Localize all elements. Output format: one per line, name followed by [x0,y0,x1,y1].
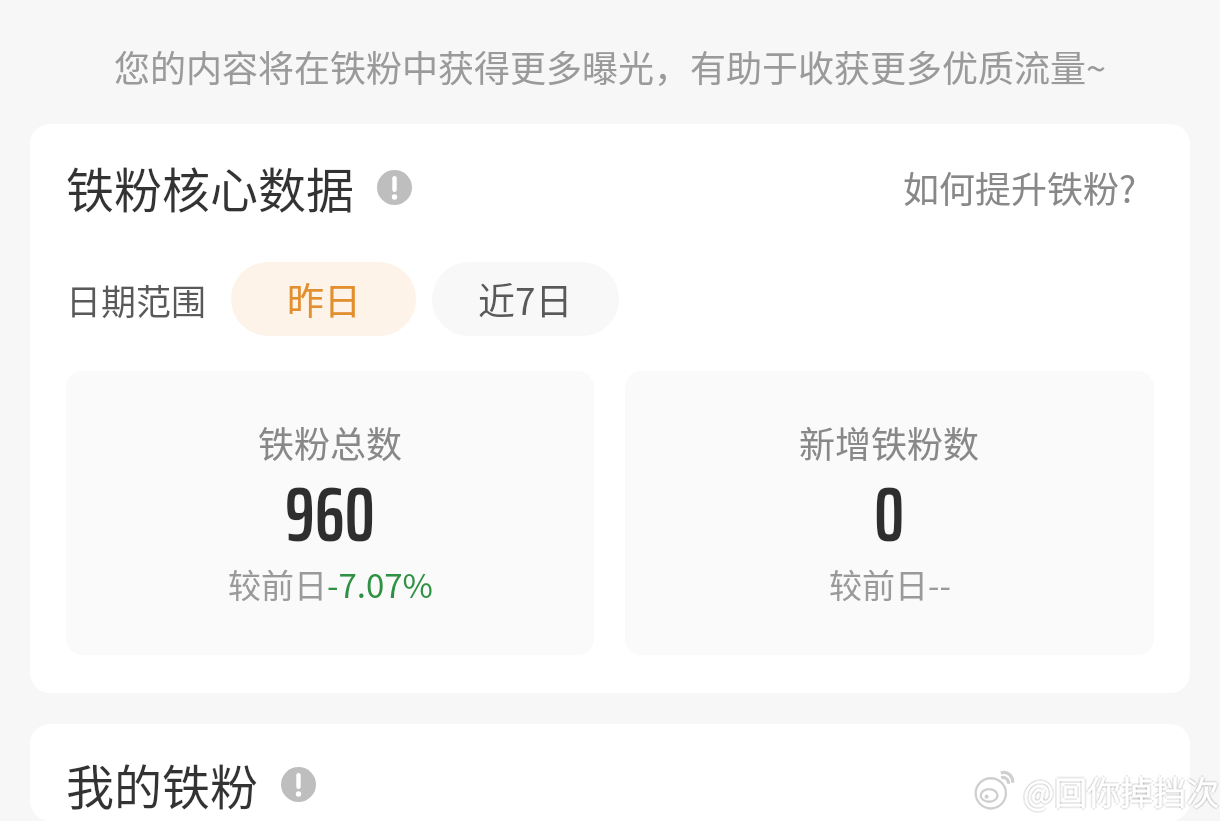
staticText: 较前日-- [829,560,951,608]
staticText: 您的内容将在铁粉中获得更多曝光，有助于收获更多优质流量~ [114,40,1106,92]
button[interactable]: 新增铁粉数 [625,371,1154,655]
staticText: 铁粉总数 [258,416,403,468]
staticText: 铁粉核心数据 [66,152,355,222]
staticText: 960 [285,455,375,575]
button[interactable]: 我的铁粉说明 [281,767,316,802]
button[interactable]: 铁粉总数 [66,371,594,655]
staticText: 0 [874,455,905,575]
button[interactable]: 昨日 [231,262,416,336]
staticText: 昨日 [287,272,361,326]
button[interactable]: 铁粉核心数据说明 [377,170,412,205]
staticText: @回你掉挡次 [1021,767,1218,815]
staticText: @回你掉挡次 [1023,769,1220,817]
staticText: 较前日-7.07% [228,560,433,608]
button[interactable]: 近7日 [432,262,619,336]
staticText: 新增铁粉数 [799,416,980,468]
button[interactable]: 如何提升铁粉? [903,161,1137,213]
staticText: 日期范围 [66,274,207,325]
staticText: 近7日 [478,272,573,326]
staticText: @回你掉挡次 [1025,767,1220,815]
staticText: @回你掉挡次 [1023,765,1220,813]
staticText: 我的铁粉 [66,749,259,819]
staticText: @回你掉挡次 [1023,767,1220,815]
